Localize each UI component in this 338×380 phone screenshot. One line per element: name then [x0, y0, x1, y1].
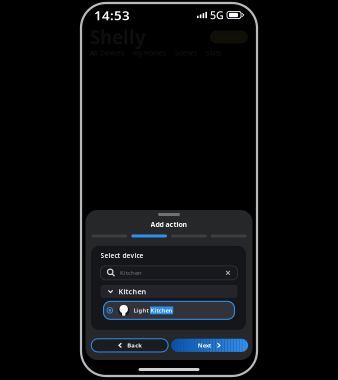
- staticText: Add action: [150, 219, 187, 229]
- staticText: Kitchen: [120, 269, 142, 277]
- staticText: 5G: [210, 8, 224, 22]
- button[interactable]: Next: [171, 339, 248, 352]
- staticText: 14:53: [94, 6, 130, 24]
- staticText: Stats: [206, 49, 221, 57]
- staticText: Kitchen: [151, 306, 173, 314]
- staticText: Next: [198, 341, 212, 349]
- staticText: Back: [127, 341, 142, 349]
- staticText: Light: [133, 306, 148, 314]
- staticText: All Devices: [90, 49, 124, 57]
- staticText: Shelly: [90, 25, 146, 49]
- button[interactable]: Kitchen: [100, 266, 237, 280]
- button[interactable]: Back: [91, 339, 168, 352]
- staticText: Kitchen: [118, 286, 146, 296]
- staticText: My Homes: [133, 49, 166, 57]
- button[interactable]: Light: [103, 301, 234, 319]
- staticText: Select device: [100, 251, 143, 260]
- staticText: Scenes: [175, 49, 197, 57]
- button[interactable]: Kitchen: [100, 285, 237, 298]
